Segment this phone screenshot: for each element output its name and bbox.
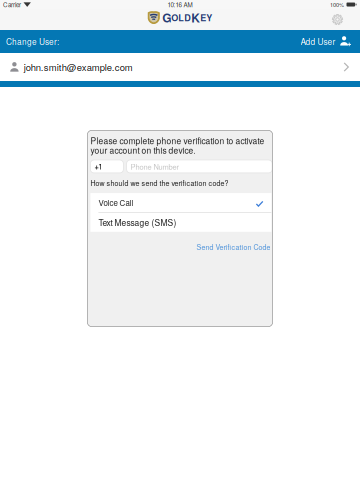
staticText: G — [162, 9, 171, 26]
staticText: Change User: — [6, 36, 59, 47]
staticText: your account on this device. — [90, 144, 195, 156]
staticText: How should we send the verification code… — [90, 178, 228, 188]
staticText: OLD — [171, 11, 191, 24]
button[interactable]: john.smith@example.com — [0, 53, 360, 81]
staticText: Phone Number — [131, 161, 179, 172]
button[interactable]: Voice Call — [90, 193, 271, 212]
staticText: john.smith@example.com — [24, 60, 133, 74]
staticText: Carrier — [3, 0, 21, 9]
staticText: 100% — [330, 0, 344, 8]
staticText: Voice Call — [98, 197, 133, 208]
staticText: Please complete phone verification to ac… — [90, 135, 264, 147]
staticText: 10:16 AM — [167, 0, 192, 9]
staticText: Text Message (SMS) — [98, 216, 176, 228]
button[interactable]: Send Verification Code — [196, 242, 270, 252]
button[interactable]: Add User — [300, 30, 360, 53]
staticText: +1 — [94, 161, 102, 172]
staticText: Add User — [300, 36, 335, 47]
button[interactable]: Settings — [328, 10, 346, 28]
staticText: K — [191, 9, 200, 26]
staticText: EY — [200, 11, 212, 24]
button[interactable]: Change User: — [0, 30, 59, 53]
button[interactable]: Text Message (SMS) — [90, 213, 271, 232]
staticText: Send Verification Code — [196, 242, 270, 252]
